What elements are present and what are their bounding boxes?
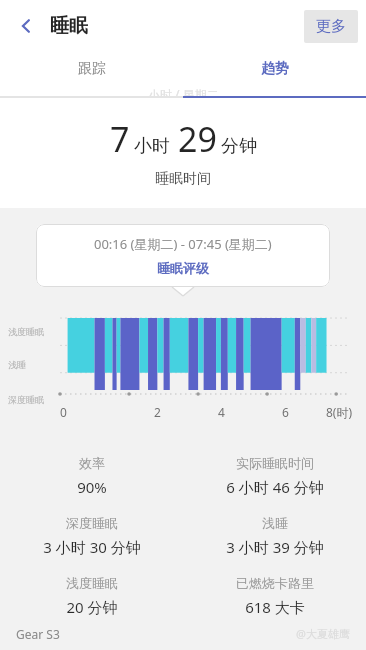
staticText: 20 分钟 bbox=[66, 597, 118, 617]
staticText: 0 bbox=[60, 404, 67, 420]
staticText: @大夏雄鹰 bbox=[296, 626, 350, 640]
staticText: 跟踪 bbox=[78, 60, 106, 78]
staticText: 睡眠 bbox=[50, 14, 88, 38]
button[interactable]: 效率 bbox=[0, 455, 183, 497]
staticText: 4 bbox=[218, 404, 225, 420]
staticText: 小时 / 星期二 bbox=[148, 86, 219, 96]
staticText: 3 小时 30 分钟 bbox=[43, 537, 141, 557]
staticText: 已燃烧卡路里 bbox=[236, 575, 314, 591]
staticText: 8(时) bbox=[326, 404, 353, 420]
staticText: 分钟 bbox=[221, 135, 257, 158]
staticText: 效率 bbox=[79, 455, 105, 471]
staticText: 睡眠评级 bbox=[157, 260, 209, 276]
button[interactable]: 已燃烧卡路里 bbox=[183, 575, 366, 617]
staticText: 2 bbox=[154, 404, 161, 420]
button[interactable]: 深度睡眠 bbox=[0, 515, 183, 557]
staticText: 6 小时 46 分钟 bbox=[226, 477, 324, 497]
staticText: 3 小时 39 分钟 bbox=[226, 537, 324, 557]
staticText: 29 bbox=[178, 116, 217, 162]
staticText: 90% bbox=[77, 477, 107, 497]
button[interactable]: 浅度睡眠 bbox=[0, 575, 183, 617]
button[interactable]: 跟踪 bbox=[0, 52, 183, 86]
staticText: 实际睡眠时间 bbox=[236, 455, 314, 471]
button[interactable]: 更多 bbox=[304, 10, 358, 43]
staticText: 浅睡 bbox=[262, 515, 288, 531]
staticText: 6 bbox=[282, 404, 289, 420]
button[interactable]: 00:16 (星期二) - 07:45 (星期二) bbox=[36, 224, 330, 287]
button[interactable]: 实际睡眠时间 bbox=[183, 455, 366, 497]
staticText: 00:16 (星期二) - 07:45 (星期二) bbox=[94, 235, 272, 253]
staticText: 趋势 bbox=[261, 60, 289, 78]
staticText: 睡眠时间 bbox=[155, 170, 211, 188]
button[interactable]: 趋势 bbox=[183, 52, 366, 86]
staticText: 618 大卡 bbox=[245, 597, 305, 617]
button[interactable]: Back bbox=[4, 4, 48, 48]
staticText: Gear S3 bbox=[16, 626, 60, 640]
staticText: 更多 bbox=[316, 17, 346, 36]
staticText: 浅睡 bbox=[8, 359, 26, 370]
staticText: 深度睡眠 bbox=[66, 515, 118, 531]
staticText: 浅度睡眠 bbox=[66, 575, 118, 591]
button[interactable]: 浅睡 bbox=[183, 515, 366, 557]
staticText: 7 bbox=[110, 116, 130, 162]
staticText: 浅度睡眠 bbox=[8, 326, 44, 337]
staticText: 小时 bbox=[134, 135, 170, 158]
staticText: 深度睡眠 bbox=[8, 394, 44, 405]
